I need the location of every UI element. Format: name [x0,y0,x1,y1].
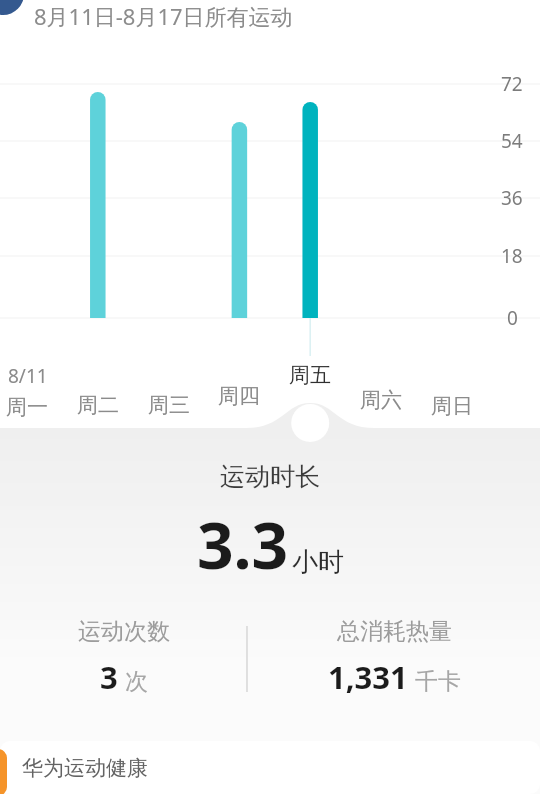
button[interactable]: 华为运动健康 应用图标 [0,749,10,794]
staticText: 8/11 [8,363,48,389]
staticText: 1,331 [328,656,408,698]
button[interactable]: 8月11日-8月17日所有运动 [34,0,374,35]
staticText: 运动时长 [220,461,320,492]
staticText: 8月11日-8月17日所有运动 [34,1,293,31]
staticText: 周日 [431,393,473,419]
staticText: 54 [501,128,523,154]
staticText: 小时 [292,546,344,579]
button[interactable]: 周六 [347,384,415,416]
button[interactable]: 周一 [0,391,61,423]
button[interactable]: 周二 [64,389,132,421]
button[interactable]: 总消耗热量 [248,617,540,709]
staticText: 千卡 [415,667,461,696]
staticText: 周三 [148,392,190,418]
button[interactable]: 运动次数 [0,617,247,709]
staticText: 华为运动健康 [22,755,148,781]
button[interactable]: 华为运动健康 [0,741,540,794]
staticText: 3 [100,656,118,698]
staticText: 次 [125,667,148,696]
staticText: 36 [501,185,523,211]
button[interactable]: 周四 [205,380,273,412]
staticText: 周四 [218,383,260,409]
button[interactable]: 周五 [276,359,344,391]
staticText: 周一 [6,394,48,420]
staticText: 总消耗热量 [337,617,452,646]
staticText: 周五 [289,362,331,388]
staticText: 周二 [77,392,119,418]
button[interactable]: 周日 [418,390,486,422]
staticText: 3.3 [197,501,289,586]
staticText: 72 [501,71,523,97]
button[interactable]: 周三 [135,389,203,421]
staticText: 周六 [360,387,402,413]
staticText: 0 [507,305,518,331]
staticText: 18 [501,243,523,269]
staticText: 运动次数 [78,617,170,646]
button[interactable]: 运动时长 [0,461,540,586]
